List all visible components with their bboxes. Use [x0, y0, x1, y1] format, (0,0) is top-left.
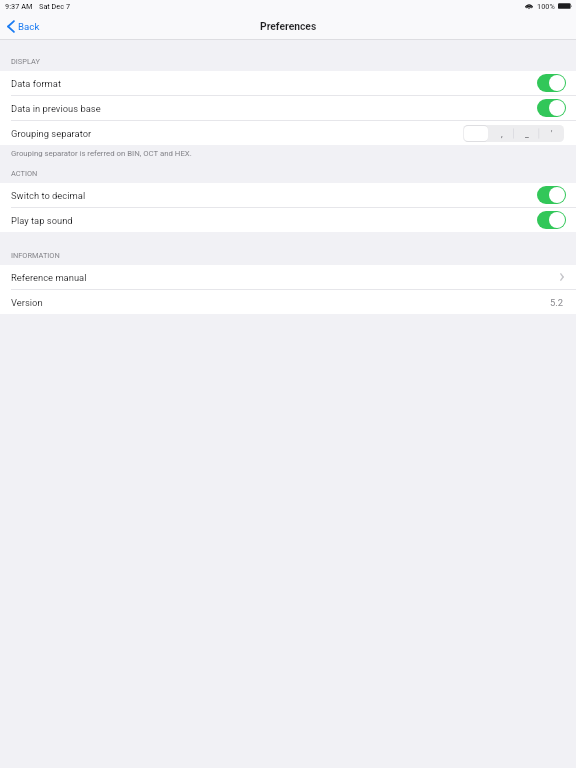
staticText: INFORMATION — [11, 251, 60, 260]
button[interactable]: space — [463, 125, 489, 142]
staticText: Sat Dec 7 — [39, 2, 71, 11]
staticText: 5.2 — [550, 297, 564, 308]
staticText: DISPLAY — [11, 57, 40, 66]
staticText: Grouping separator — [11, 128, 92, 139]
staticText: Grouping separator is referred on BIN, O… — [11, 149, 192, 158]
button[interactable]: Switch to decimal — [0, 183, 576, 207]
staticText: Switch to decimal — [11, 190, 86, 201]
button[interactable]: Reference manual — [0, 265, 576, 289]
button[interactable]: Version — [0, 290, 576, 314]
button[interactable]: Back — [0, 13, 48, 39]
button[interactable]: Play tap sound — [537, 211, 566, 229]
staticText: Reference manual — [11, 272, 87, 283]
button[interactable]: Data in previous base — [537, 99, 566, 117]
button[interactable]: ' — [539, 125, 564, 142]
staticText: , — [501, 129, 503, 139]
staticText: Back — [18, 21, 40, 32]
button[interactable]: Play tap sound — [0, 208, 576, 232]
staticText: Play tap sound — [11, 215, 73, 226]
staticText: 100% — [537, 2, 555, 11]
staticText: Data format — [11, 78, 61, 89]
button[interactable]: , — [489, 125, 514, 142]
staticText: ACTION — [11, 169, 38, 178]
button[interactable]: Switch to decimal — [537, 186, 566, 204]
button[interactable]: Data format — [537, 74, 566, 92]
staticText: ' — [551, 129, 553, 139]
button[interactable]: _ — [514, 125, 539, 142]
button[interactable]: Data format — [0, 71, 576, 95]
staticText: 9:37 AM — [5, 2, 33, 11]
staticText: Preferences — [260, 20, 317, 32]
button[interactable]: Data in previous base — [0, 96, 576, 120]
staticText: Data in previous base — [11, 103, 101, 114]
staticText: Version — [11, 297, 43, 308]
staticText: _ — [525, 129, 529, 139]
